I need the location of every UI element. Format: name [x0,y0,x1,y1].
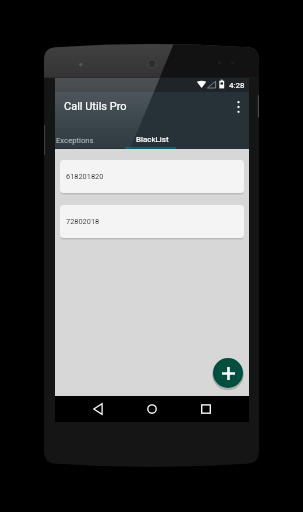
button[interactable]: Home [140,396,164,422]
staticText: BlackList [136,135,169,144]
staticText: Exceptions [56,136,94,145]
staticText: 618201820 [66,172,104,181]
button[interactable]: Exceptions [55,122,110,149]
staticText: Call Utils Pro [64,100,127,113]
button[interactable]: Back [86,396,110,422]
button[interactable]: More options [227,92,249,122]
staticText: 4:28 [229,81,245,90]
button[interactable]: 72802018 [60,205,244,238]
button[interactable]: Recents [194,396,218,422]
staticText: 72802018 [66,217,100,226]
button[interactable]: Add [213,358,243,388]
button[interactable]: 618201820 [60,160,244,193]
button[interactable]: BlackList [125,122,176,149]
